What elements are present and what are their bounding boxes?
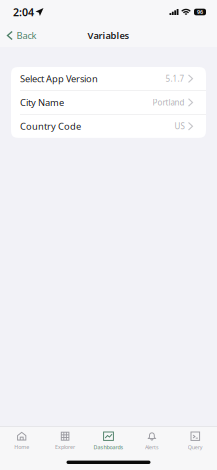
button[interactable]: Explorer — [43, 427, 87, 450]
staticText: City Name — [20, 96, 64, 109]
button[interactable]: City Name — [11, 91, 206, 114]
button[interactable]: Country Code — [11, 115, 206, 138]
button[interactable]: Home — [0, 427, 43, 450]
button[interactable]: Select App Version — [11, 67, 206, 90]
button[interactable]: Alerts — [130, 426, 174, 451]
staticText: Home — [14, 443, 29, 450]
staticText: 2:04 — [13, 5, 34, 19]
staticText: 5.1.7 — [165, 73, 184, 84]
staticText: Dashboards — [93, 444, 123, 451]
button[interactable]: Back — [0, 24, 45, 47]
staticText: Explorer — [55, 443, 75, 450]
staticText: Country Code — [20, 120, 81, 132]
staticText: 96 — [197, 8, 203, 16]
staticText: US — [174, 121, 184, 131]
button[interactable]: Query — [174, 426, 217, 451]
staticText: Portland — [152, 97, 184, 108]
staticText: Alerts — [145, 444, 159, 451]
staticText: Variables — [87, 29, 129, 42]
staticText: Back — [17, 29, 37, 42]
button[interactable]: Dashboards — [87, 426, 130, 451]
staticText: Query — [188, 444, 203, 451]
staticText: Select App Version — [20, 72, 98, 85]
